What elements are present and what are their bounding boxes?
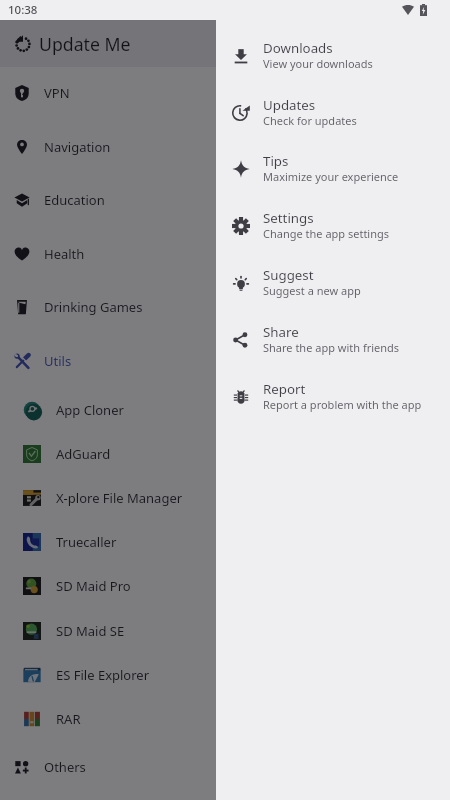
staticText: Suggest (263, 266, 314, 284)
staticText: Change the app settings (263, 226, 390, 241)
button[interactable]: Others (0, 745, 216, 789)
button[interactable]: VPN (0, 66, 216, 120)
button[interactable]: Update Me (0, 0, 216, 67)
staticText: App Cloner (56, 401, 124, 419)
staticText: Health (44, 245, 85, 263)
button[interactable]: Suggest (0, 255, 450, 311)
button[interactable]: Drinking Games (0, 280, 216, 334)
button[interactable]: Education (0, 173, 216, 227)
staticText: Tips (263, 152, 289, 170)
button[interactable]: Health (0, 227, 216, 281)
staticText: Truecaller (56, 533, 117, 551)
staticText: Share the app with friends (263, 340, 400, 355)
staticText: SD Maid SE (56, 622, 125, 640)
staticText: Education (44, 191, 105, 209)
button[interactable]: Share (0, 312, 450, 368)
staticText: Suggest a new app (263, 283, 361, 298)
staticText: Share (263, 323, 299, 341)
staticText: X-plore File Manager (56, 489, 183, 507)
button[interactable]: SD Maid Pro (0, 564, 216, 608)
staticText: Others (44, 758, 86, 776)
staticText: Utils (44, 352, 72, 370)
button[interactable]: App Cloner (0, 388, 216, 432)
button[interactable]: Truecaller (0, 520, 216, 564)
button[interactable]: Navigation (0, 120, 216, 174)
staticText: Updates (263, 96, 316, 114)
button[interactable]: X-plore File Manager (0, 476, 216, 520)
button[interactable]: Downloads (0, 28, 450, 84)
staticText: Update Me (39, 32, 131, 56)
staticText: Report (263, 380, 306, 398)
staticText: VPN (44, 84, 70, 102)
button[interactable]: Report (0, 369, 450, 425)
staticText: Maximize your experience (263, 169, 399, 184)
button[interactable]: SD Maid SE (0, 609, 216, 653)
staticText: ES File Explorer (56, 666, 150, 684)
staticText: 10:38 (8, 2, 38, 18)
button[interactable]: AdGuard (0, 432, 216, 476)
staticText: Drinking Games (44, 298, 143, 316)
staticText: SD Maid Pro (56, 577, 131, 595)
button[interactable]: Settings (0, 198, 450, 254)
button[interactable]: RAR (0, 697, 216, 741)
button[interactable]: ES File Explorer (0, 653, 216, 697)
staticText: Report a problem with the app (263, 397, 422, 412)
button[interactable]: Utils (0, 334, 216, 388)
button[interactable]: Tips (0, 141, 450, 197)
staticText: RAR (56, 710, 81, 728)
staticText: Navigation (44, 138, 111, 156)
staticText: AdGuard (56, 445, 111, 463)
staticText: Settings (263, 209, 314, 227)
staticText: Downloads (263, 39, 333, 57)
button[interactable]: Updates (0, 85, 450, 141)
staticText: View your downloads (263, 56, 373, 71)
staticText: Check for updates (263, 113, 357, 128)
